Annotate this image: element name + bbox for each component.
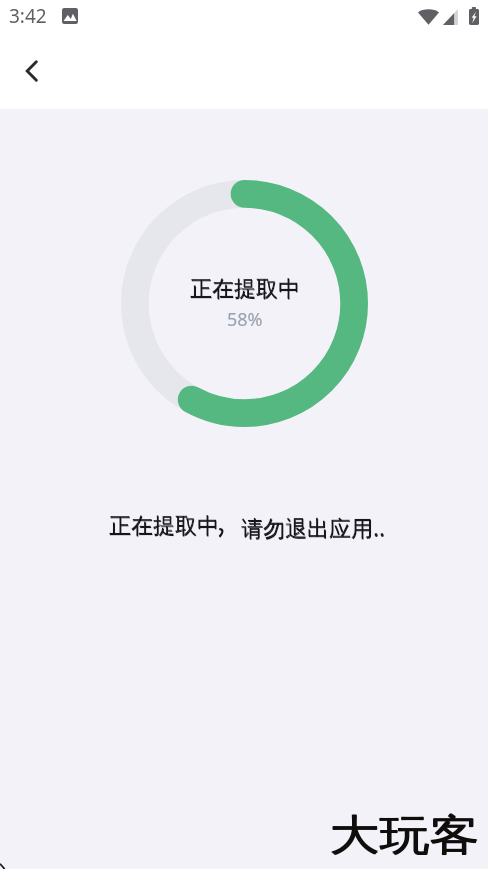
staticText: 请勿退出应用.. [241,512,385,542]
staticText: 大玩客 [330,810,480,863]
button[interactable]: Back [11,50,53,92]
staticText: 正在提取中 [191,276,301,304]
staticText: 正在提取中 [109,512,219,540]
staticText: 大玩客 [330,809,480,862]
staticText: 58% [227,307,263,332]
staticText: 大玩客 [329,809,479,862]
staticText: 请勿退出应用.. [242,513,386,543]
staticText: 大玩客 [329,810,479,863]
staticText: 正在提取中 [190,275,300,303]
staticText: 正在提取中 [110,513,220,541]
staticText: 3:42 [9,3,47,29]
